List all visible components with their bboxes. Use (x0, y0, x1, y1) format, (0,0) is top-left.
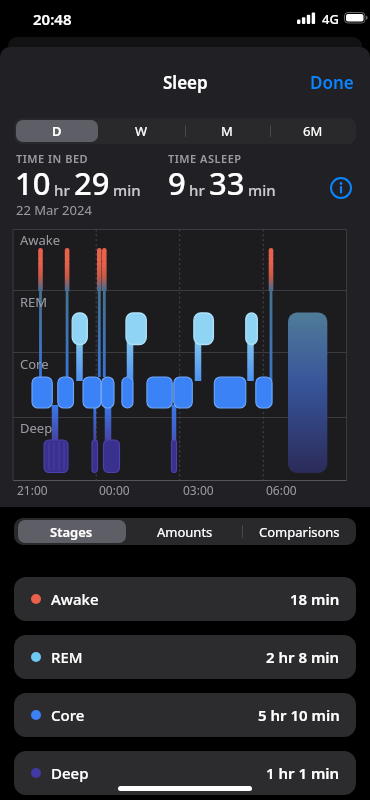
button[interactable]: D (14, 118, 99, 144)
staticText: min (248, 180, 276, 200)
button[interactable]: Deep (14, 751, 356, 795)
staticText: REM (20, 293, 48, 311)
button[interactable]: Stages (14, 518, 128, 545)
staticText: 10 (15, 162, 51, 204)
staticText: 9 (168, 162, 186, 204)
staticText: REM (51, 647, 83, 667)
staticText: Awake (20, 231, 61, 249)
staticText: Deep (51, 763, 89, 783)
staticText: min (113, 180, 141, 200)
staticText: Done (310, 71, 354, 94)
staticText: 4G (322, 10, 339, 28)
button[interactable]: Awake (14, 577, 356, 621)
staticText: 03:00 (183, 482, 214, 498)
staticText: hr (54, 180, 70, 200)
staticText: Deep (20, 419, 53, 437)
staticText: TIME ASLEEP (168, 151, 242, 166)
staticText: Core (20, 355, 49, 373)
staticText: 18 min (290, 589, 340, 609)
staticText: 00:00 (99, 482, 130, 498)
button[interactable]: Done (310, 71, 354, 94)
staticText: 06:00 (266, 482, 297, 498)
button[interactable] (330, 177, 352, 199)
staticText: 1 hr 1 min (266, 763, 340, 783)
button[interactable]: 6M (270, 118, 356, 144)
button[interactable]: Amounts (128, 518, 242, 545)
button[interactable]: M (184, 118, 270, 144)
staticText: 6M (303, 122, 323, 140)
staticText: 21:00 (17, 482, 48, 498)
staticText: Core (51, 705, 85, 725)
staticText: TIME IN BED (16, 151, 89, 166)
button[interactable]: W (99, 118, 184, 144)
staticText: 33 (209, 162, 245, 204)
staticText: Amounts (157, 523, 213, 541)
staticText: Comparisons (259, 523, 340, 541)
staticText: hr (189, 180, 205, 200)
staticText: 5 hr 10 min (258, 705, 340, 725)
staticText: Stages (50, 523, 93, 541)
staticText: 29 (74, 162, 110, 204)
staticText: W (135, 122, 148, 140)
staticText: M (221, 122, 233, 140)
staticText: D (52, 122, 62, 140)
staticText: 22 Mar 2024 (16, 201, 92, 219)
button[interactable]: Comparisons (242, 518, 356, 545)
button[interactable]: REM (14, 635, 356, 679)
button[interactable]: Core (14, 693, 356, 737)
staticText: 2 hr 8 min (266, 647, 340, 667)
staticText: 20:48 (33, 9, 72, 29)
staticText: Awake (51, 589, 99, 609)
staticText: Sleep (163, 71, 208, 94)
